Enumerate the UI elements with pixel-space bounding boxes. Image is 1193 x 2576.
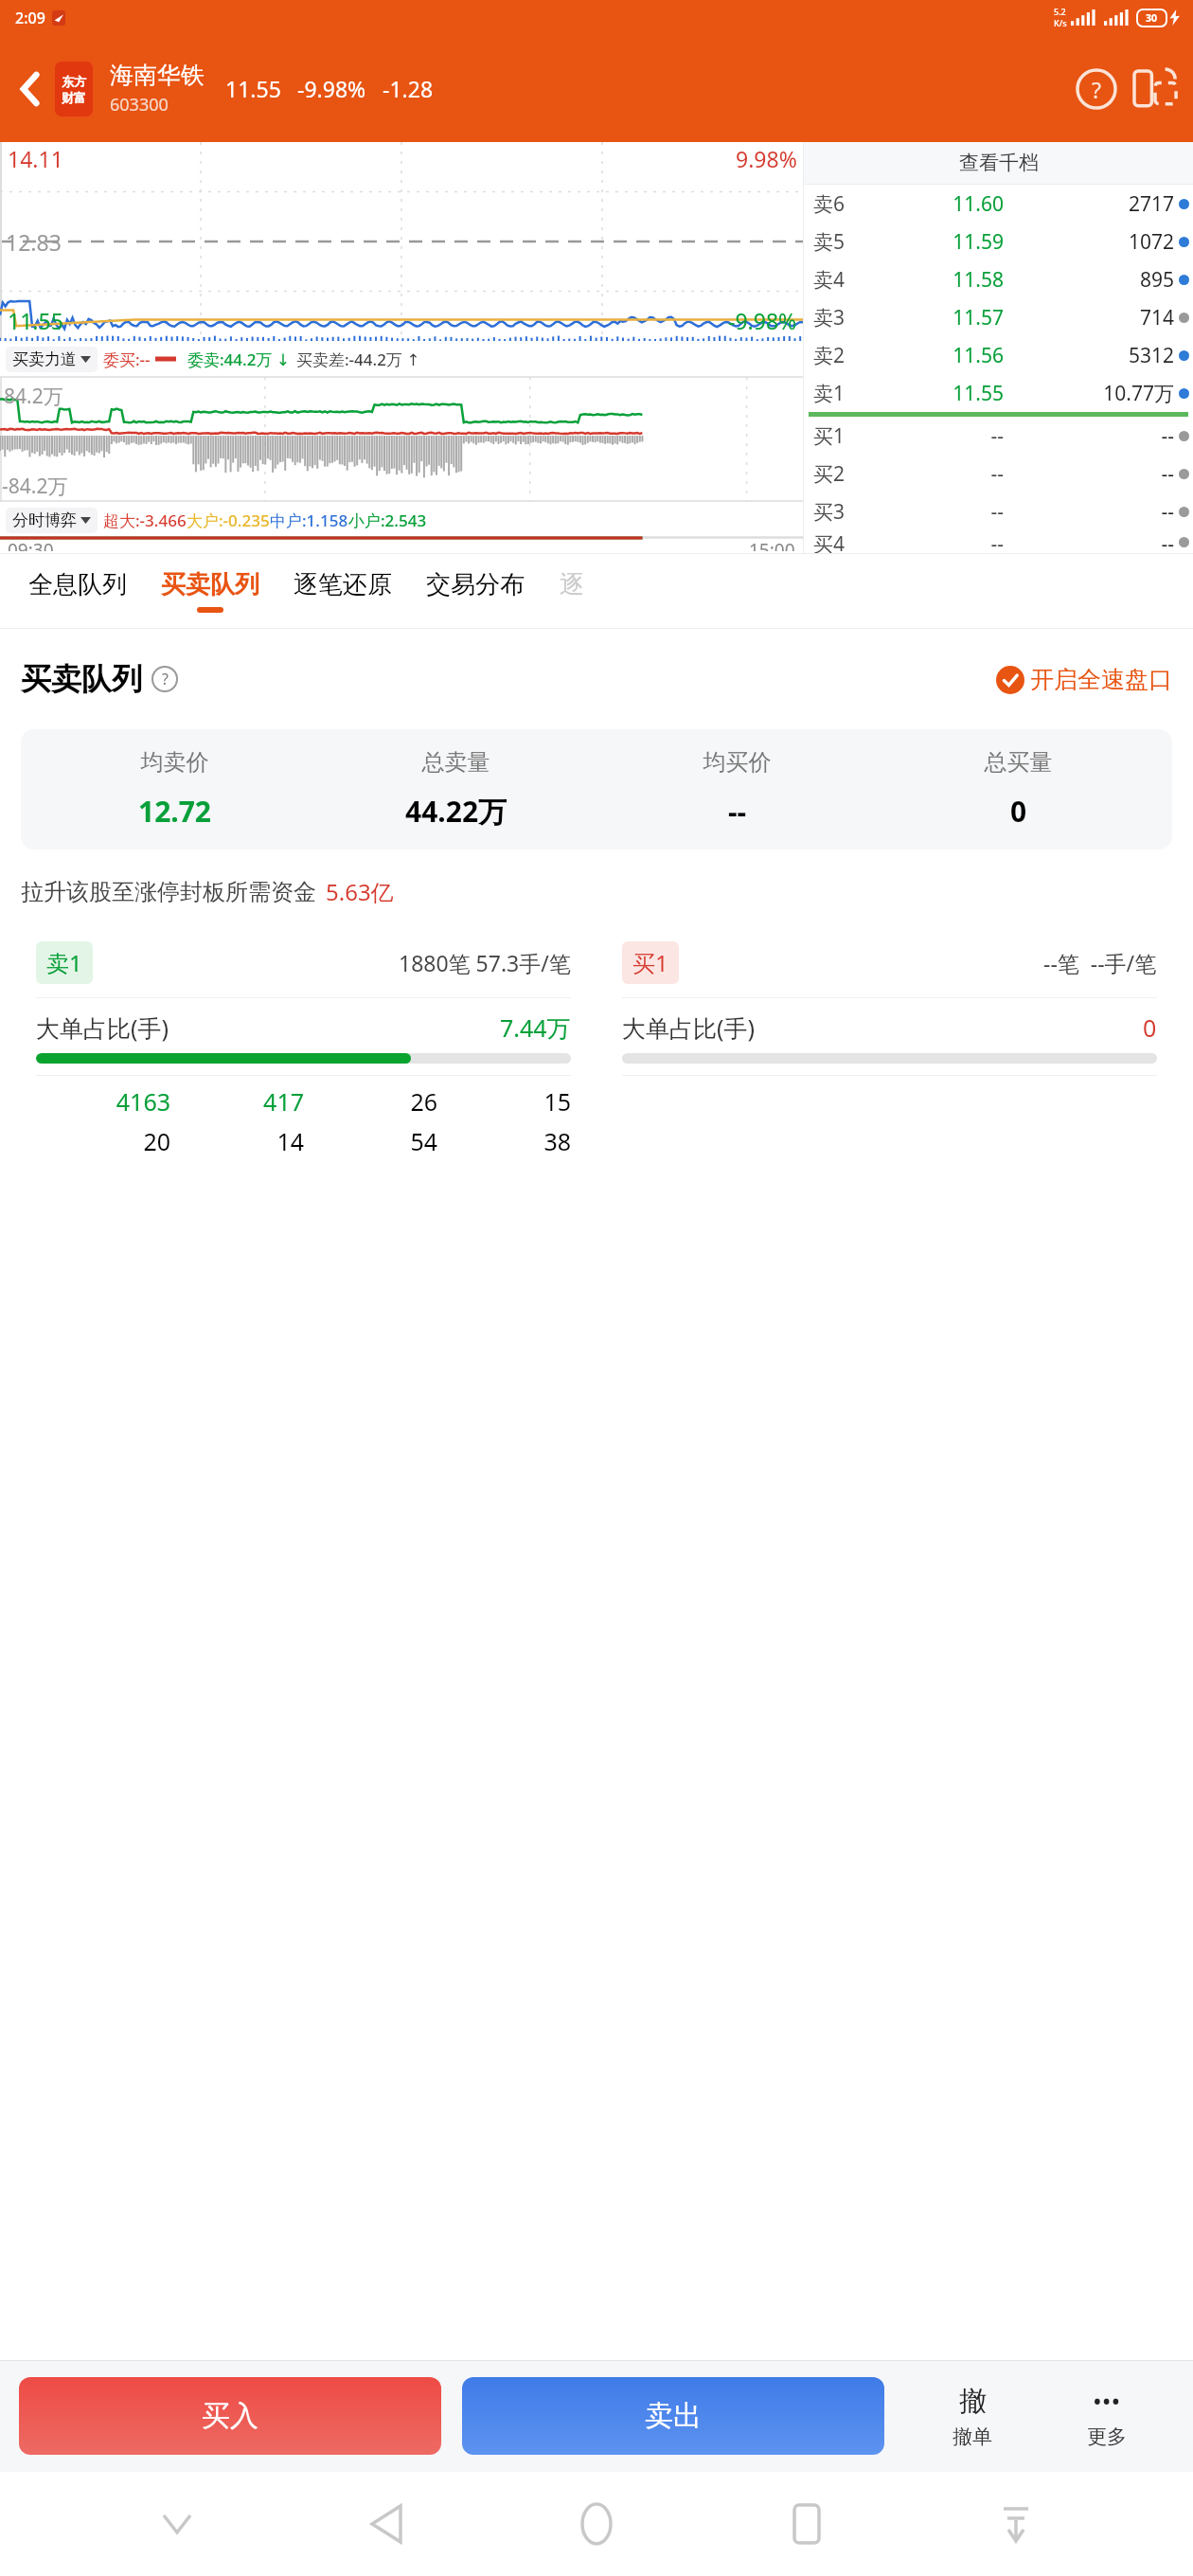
staticText: 大单占比(手) — [36, 1011, 169, 1044]
staticText: 9.98% — [736, 144, 797, 173]
button[interactable]: 买1 — [804, 417, 1193, 455]
staticText: 11.55 — [225, 74, 281, 103]
button[interactable]: 买2 — [804, 455, 1193, 492]
staticText: -- — [1007, 460, 1174, 488]
staticText: 895 — [1007, 266, 1174, 294]
button[interactable]: Info — [151, 666, 178, 692]
staticText: 中户:1.158 — [270, 510, 348, 531]
staticText: 均卖价 — [34, 748, 315, 777]
staticText: 卖1 — [46, 947, 82, 978]
button[interactable]: 全息队列 — [11, 554, 144, 628]
staticText: 均买价 — [596, 748, 878, 777]
staticText: -- — [859, 422, 1004, 450]
button[interactable]: 买4 — [804, 530, 1193, 553]
staticText: 卖出 — [645, 2398, 702, 2434]
staticText: 买1 — [813, 422, 859, 450]
staticText: 买1 — [632, 947, 668, 978]
staticText: 总卖量 — [315, 748, 596, 777]
staticText: 买卖队列 — [161, 569, 259, 600]
staticText: 全息队列 — [28, 569, 127, 600]
staticText: 5.2 — [1054, 6, 1066, 17]
staticText: 卖6 — [813, 190, 859, 218]
staticText: 买卖队列 — [21, 660, 142, 698]
button[interactable]: 撤 — [905, 2384, 1040, 2449]
button[interactable]: Back — [6, 64, 55, 114]
staticText: 30 — [1146, 11, 1158, 25]
staticText: 委买:-- — [103, 349, 151, 370]
staticText: 大户:-0.235 — [187, 510, 270, 531]
staticText: 15 — [437, 1085, 571, 1118]
staticText: 714 — [1007, 304, 1174, 331]
button[interactable]: 买卖队列 — [144, 554, 276, 628]
staticText: 买卖差:-44.2万 ↑ — [296, 349, 420, 370]
button[interactable]: 逐笔还原 — [276, 554, 409, 628]
staticText: 超大:-3.466 — [103, 510, 187, 531]
staticText: 11.60 — [859, 190, 1004, 218]
staticText: --笔 --手/笔 — [1043, 948, 1157, 977]
button[interactable]: 卖6 — [804, 185, 1193, 223]
staticText: 大单占比(手) — [622, 1011, 756, 1044]
staticText: 09:30 — [8, 538, 54, 551]
staticText: 26 — [304, 1085, 437, 1118]
button[interactable]: Home — [563, 2491, 630, 2557]
staticText: 撤 — [959, 2384, 987, 2419]
staticText: 买3 — [813, 498, 859, 526]
staticText: ? — [162, 669, 169, 689]
button[interactable]: Help — [1070, 63, 1123, 116]
button[interactable]: Rotate to landscape — [1129, 63, 1182, 116]
staticText: -9.98% — [297, 74, 366, 103]
staticText: 11.59 — [859, 228, 1004, 256]
button[interactable]: 均卖价 — [21, 729, 1172, 850]
staticText: 拉升该股至涨停封板所需资金 — [21, 878, 316, 906]
staticText: 11.56 — [859, 342, 1004, 369]
staticText: -- — [1007, 422, 1174, 450]
button[interactable]: Back — [353, 2491, 419, 2557]
button[interactable]: 卖2 — [804, 336, 1193, 374]
staticText: 逐笔还原 — [294, 569, 392, 600]
staticText: 0 — [1143, 1011, 1157, 1044]
button[interactable]: Recents — [774, 2491, 840, 2557]
button[interactable]: 分时博弈 — [12, 510, 91, 530]
staticText: 小户:2.543 — [348, 510, 427, 531]
staticText: 1880笔 57.3手/笔 — [399, 948, 571, 977]
button[interactable]: ••• — [1040, 2384, 1174, 2449]
staticText: 54 — [304, 1125, 437, 1157]
staticText: -- — [859, 530, 1004, 553]
button[interactable]: 卖5 — [804, 223, 1193, 260]
button[interactable]: 买3 — [804, 492, 1193, 530]
staticText: 卖4 — [813, 266, 859, 294]
button[interactable]: 交易分布 — [409, 554, 542, 628]
button[interactable]: 买入 — [19, 2377, 441, 2455]
staticText: 5312 — [1007, 342, 1174, 369]
staticText: -- — [1007, 530, 1174, 553]
staticText: 417 — [170, 1085, 304, 1118]
staticText: 5.63亿 — [326, 876, 394, 907]
staticText: 20 — [36, 1125, 170, 1157]
button[interactable]: 买1 — [607, 928, 1172, 1171]
button[interactable]: 查看千档 — [804, 142, 1193, 184]
button[interactable]: 卖1 — [21, 928, 586, 1171]
button[interactable]: 卖出 — [462, 2377, 884, 2455]
button[interactable]: 卖3 — [804, 298, 1193, 336]
button[interactable]: 买卖力道 — [12, 349, 91, 369]
staticText: -1.28 — [383, 74, 434, 103]
staticText: 15:00 — [749, 538, 795, 551]
staticText: -- — [596, 792, 878, 831]
button[interactable]: 卖1 — [804, 374, 1193, 412]
staticText: 总买量 — [878, 748, 1159, 777]
staticText: -- — [859, 498, 1004, 526]
staticText: 海南华铁 — [110, 61, 205, 90]
staticText: 11.55 — [8, 306, 63, 335]
staticText: 东方 — [62, 74, 86, 89]
button[interactable]: 逐 — [542, 554, 602, 628]
button[interactable]: 开启全速盘口 — [996, 665, 1172, 694]
staticText: 买4 — [813, 530, 859, 553]
staticText: 卖3 — [813, 304, 859, 331]
staticText: 卖1 — [813, 380, 859, 407]
staticText: 44.22万 — [315, 792, 596, 831]
button[interactable]: Collapse — [144, 2491, 210, 2557]
button[interactable]: 卖4 — [804, 260, 1193, 298]
staticText: 1072 — [1007, 228, 1174, 256]
staticText: 卖5 — [813, 228, 859, 256]
button[interactable]: Hide — [983, 2491, 1049, 2557]
